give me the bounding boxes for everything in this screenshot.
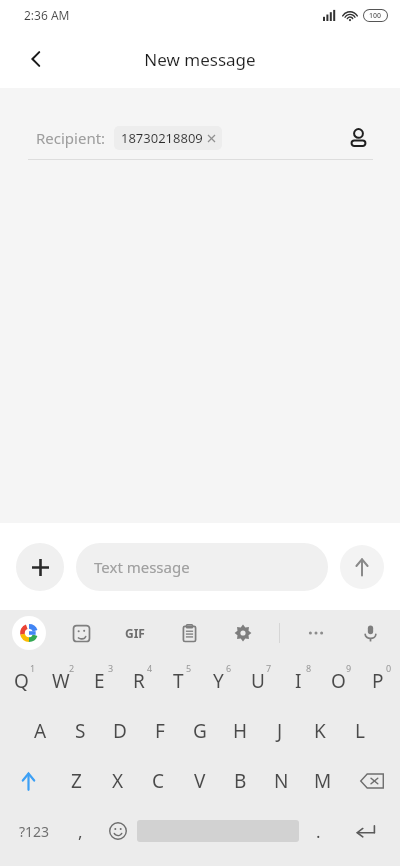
staticText: Q [14,668,29,694]
button[interactable]: Clipboard [171,615,207,651]
staticText: H [233,718,248,744]
staticText: L [355,718,365,744]
staticText: S [75,718,86,744]
button[interactable]: Y [198,656,238,706]
button[interactable]: Emoji [99,806,137,856]
staticText: R [133,668,145,694]
staticText: Text message [94,557,190,577]
staticText: Recipient: [36,128,106,148]
staticText: Y [213,668,224,694]
button[interactable]: W [41,656,80,706]
button[interactable]: Choose contact [338,118,378,158]
button[interactable]: J [260,706,300,756]
staticText: G [193,718,207,744]
button[interactable]: P [358,656,398,706]
button[interactable]: M [302,756,343,806]
button[interactable]: U [238,656,278,706]
staticText: 2 [69,662,75,674]
staticText: 6 [226,662,232,674]
button[interactable]: R [119,656,158,706]
staticText: C [152,768,165,794]
staticText: GIF [125,625,145,641]
staticText: B [234,768,247,794]
button[interactable]: F [140,706,180,756]
staticText: T [173,668,184,694]
button[interactable]: V [179,756,220,806]
button[interactable]: T [158,656,198,706]
button[interactable]: Add attachment [16,543,64,591]
button[interactable]: G [180,706,220,756]
staticText: ?123 [19,822,50,841]
button[interactable]: Enter [337,806,394,856]
button[interactable]: E [80,656,119,706]
staticText: I [295,668,302,694]
button[interactable]: O [318,656,358,706]
staticText: N [274,768,289,794]
staticText: 9 [346,662,352,674]
button[interactable]: X [97,756,138,806]
staticText: D [113,718,127,744]
button[interactable]: Text message [76,543,328,591]
button[interactable]: Backspace [343,756,400,806]
button[interactable]: B [220,756,261,806]
button[interactable]: 18730218809 [114,126,222,150]
staticText: 100 [369,11,382,21]
button[interactable]: . [299,806,337,856]
staticText: 8 [306,662,312,674]
staticText: V [194,768,206,794]
button[interactable]: Voice input [352,615,388,651]
staticText: , [78,820,83,843]
button[interactable]: D [100,706,140,756]
button[interactable]: Google [12,616,46,650]
button[interactable]: Sticker [63,615,99,651]
staticText: J [277,718,283,744]
staticText: 1 [30,662,36,674]
staticText: O [331,668,346,694]
staticText: M [314,768,332,794]
button[interactable]: Back [14,37,58,81]
button[interactable]: Send [340,545,384,589]
staticText: New message [144,48,256,71]
button[interactable]: H [220,706,260,756]
button[interactable]: Q [2,656,41,706]
button[interactable]: N [261,756,302,806]
button[interactable]: , [62,806,99,856]
staticText: X [112,768,124,794]
staticText: 0 [386,662,392,674]
staticText: W [52,668,70,694]
button[interactable]: Z [56,756,97,806]
staticText: F [155,718,165,744]
staticText: K [314,718,326,744]
staticText: 3 [108,662,114,674]
button[interactable]: More options [298,615,334,651]
button[interactable]: K [300,706,340,756]
button[interactable]: C [138,756,179,806]
button[interactable]: ?123 [6,806,62,856]
button[interactable]: Settings [225,615,261,651]
staticText: P [372,668,384,694]
staticText: . [316,820,321,843]
staticText: U [251,668,265,694]
staticText: E [94,668,105,694]
button[interactable]: I [278,656,318,706]
staticText: 2:36 AM [24,7,70,23]
button[interactable]: Shift [0,756,56,806]
staticText: 4 [147,662,153,674]
staticText: Z [71,768,82,794]
button[interactable]: GIF [117,615,153,651]
button[interactable]: A [20,706,60,756]
staticText: 5 [186,662,192,674]
staticText: 18730218809 [121,129,203,147]
button[interactable]: S [60,706,100,756]
button[interactable]: L [340,706,380,756]
staticText: 7 [266,662,272,674]
staticText: A [34,718,47,744]
